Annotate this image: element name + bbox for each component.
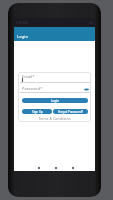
staticText: 9:30 AM [16,21,28,25]
staticText: Login [51,99,59,103]
staticText: 4G [89,21,93,25]
button[interactable]: Show password [84,88,89,91]
staticText: Email* [22,74,35,79]
button[interactable]: Forgot Password? [53,109,88,114]
staticText: Terms & Conditions [18,116,91,121]
button[interactable]: Login [14,27,95,41]
staticText: Login [17,34,28,40]
button[interactable]: Login [22,98,88,103]
staticText: Forgot Password? [58,110,83,114]
button[interactable]: Sign Up [22,109,52,114]
staticText: Password* [22,86,43,91]
staticText: Sign Up [32,110,43,114]
